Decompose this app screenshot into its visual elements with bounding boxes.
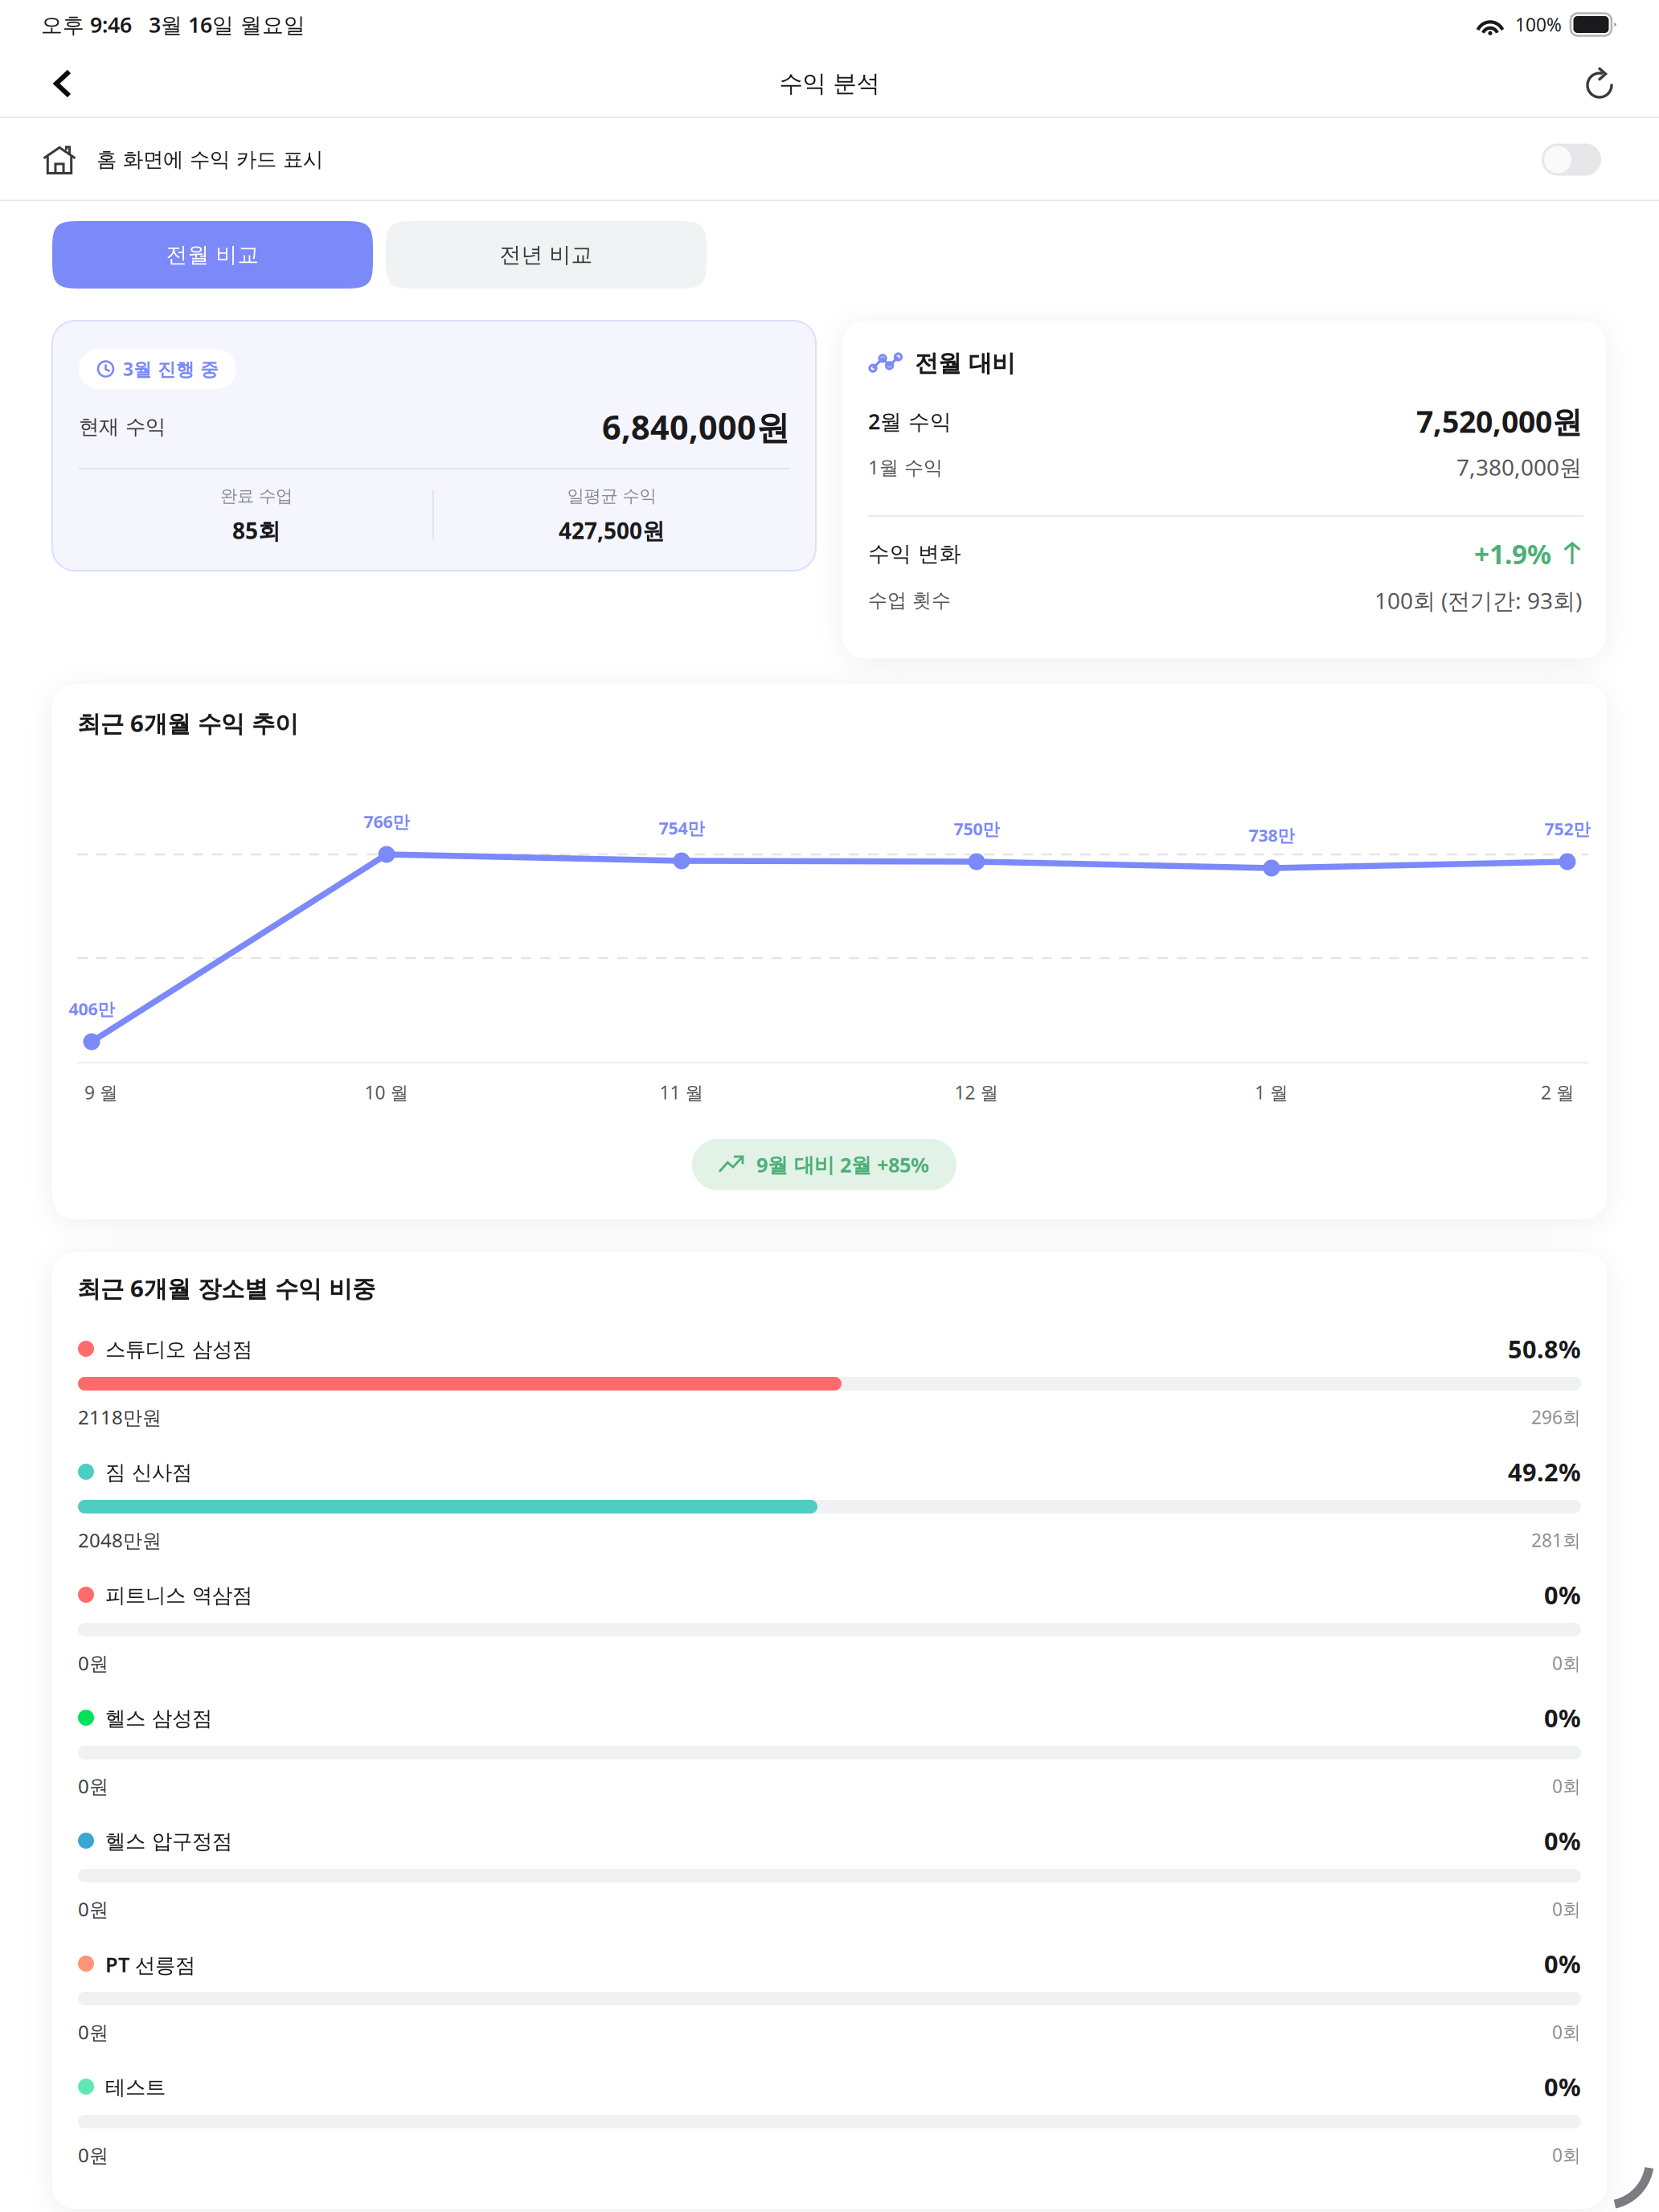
staticText: 766만 xyxy=(364,810,410,833)
staticText: 100% xyxy=(1515,12,1562,37)
staticText: 수익 분석 xyxy=(779,69,880,98)
staticText: 9월 대비 2월 +85% xyxy=(756,1151,929,1178)
staticText: 296회 xyxy=(1531,1405,1581,1429)
staticText: 짐 신사점 xyxy=(105,1460,192,1485)
staticText: 281회 xyxy=(1531,1528,1581,1552)
staticText: 2048만원 xyxy=(78,1527,162,1553)
staticText: 0회 xyxy=(1552,2143,1581,2167)
staticText: 85회 xyxy=(232,515,281,545)
staticText: 0% xyxy=(1544,1701,1581,1734)
staticText: 7,380,000원 xyxy=(1456,452,1582,482)
staticText: 0원 xyxy=(78,1650,109,1676)
staticText: +1.9% xyxy=(1474,536,1551,572)
staticText: 헬스 삼성점 xyxy=(105,1706,212,1731)
button[interactable]: 전월 비교 xyxy=(52,221,373,289)
staticText: PT 선릉점 xyxy=(105,1951,195,1978)
button[interactable]: 전년 비교 xyxy=(386,221,707,289)
staticText: 0회 xyxy=(1552,1897,1581,1921)
staticText: 0% xyxy=(1544,1578,1581,1611)
staticText: 수업 횟수 xyxy=(868,589,951,612)
staticText: 일평균 수익 xyxy=(567,485,656,507)
staticText: 전월 대비 xyxy=(915,349,1015,378)
staticText: 0원 xyxy=(78,2019,109,2045)
staticText: 0% xyxy=(1544,1824,1581,1857)
staticText: 오후 9:46 3월 16일 월요일 xyxy=(41,10,305,39)
staticText: 0회 xyxy=(1552,1651,1581,1675)
staticText: 3월 진행 중 xyxy=(123,357,219,381)
staticText: 0% xyxy=(1544,2070,1581,2103)
staticText: 738만 xyxy=(1249,824,1294,846)
staticText: 6,840,000원 xyxy=(602,405,789,449)
staticText: 2 월 xyxy=(1541,1080,1575,1104)
staticText: 헬스 압구정점 xyxy=(105,1829,232,1854)
staticText: 수익 변화 xyxy=(868,541,961,567)
staticText: 0원 xyxy=(78,1773,109,1799)
staticText: 49.2% xyxy=(1508,1455,1581,1488)
button[interactable]: 새로고침 xyxy=(1561,45,1638,122)
staticText: 테스트 xyxy=(105,2075,166,2100)
staticText: 1월 수익 xyxy=(868,454,943,480)
staticText: 7,520,000원 xyxy=(1416,401,1582,441)
staticText: 홈 화면에 수익 카드 표시 xyxy=(96,147,323,172)
staticText: 1 월 xyxy=(1255,1080,1288,1104)
staticText: 스튜디오 삼성점 xyxy=(105,1337,252,1362)
staticText: 최근 6개월 수익 추이 xyxy=(77,707,298,739)
staticText: 최근 6개월 장소별 수익 비중 xyxy=(77,1272,375,1304)
staticText: 0% xyxy=(1544,1947,1581,1980)
staticText: 10 월 xyxy=(365,1080,409,1104)
staticText: 전년 비교 xyxy=(500,242,593,268)
staticText: 0회 xyxy=(1552,2020,1581,2044)
staticText: 0원 xyxy=(78,1896,109,1922)
staticText: 0회 xyxy=(1552,1774,1581,1798)
button[interactable]: 뒤로 xyxy=(21,45,98,122)
staticText: 12 월 xyxy=(954,1080,999,1104)
staticText: 406만 xyxy=(69,997,115,1020)
staticText: 50.8% xyxy=(1508,1332,1581,1365)
staticText: 427,500원 xyxy=(559,515,665,545)
staticText: 750만 xyxy=(954,817,999,840)
staticText: 9 월 xyxy=(84,1080,118,1104)
staticText: 11 월 xyxy=(660,1080,704,1104)
staticText: 피트니스 역삼점 xyxy=(105,1583,252,1608)
staticText: 100회 (전기간: 93회) xyxy=(1374,585,1582,615)
button[interactable]: 홈 화면에 수익 카드 표시 xyxy=(0,118,1659,201)
staticText: 754만 xyxy=(659,816,705,839)
staticText: 전월 비교 xyxy=(166,242,259,268)
staticText: 현재 수익 xyxy=(79,414,166,439)
staticText: 2118만원 xyxy=(78,1404,162,1430)
staticText: 2월 수익 xyxy=(868,407,952,435)
staticText: 752만 xyxy=(1544,817,1590,840)
staticText: 완료 수업 xyxy=(220,485,293,507)
staticText: 0원 xyxy=(78,2142,109,2168)
